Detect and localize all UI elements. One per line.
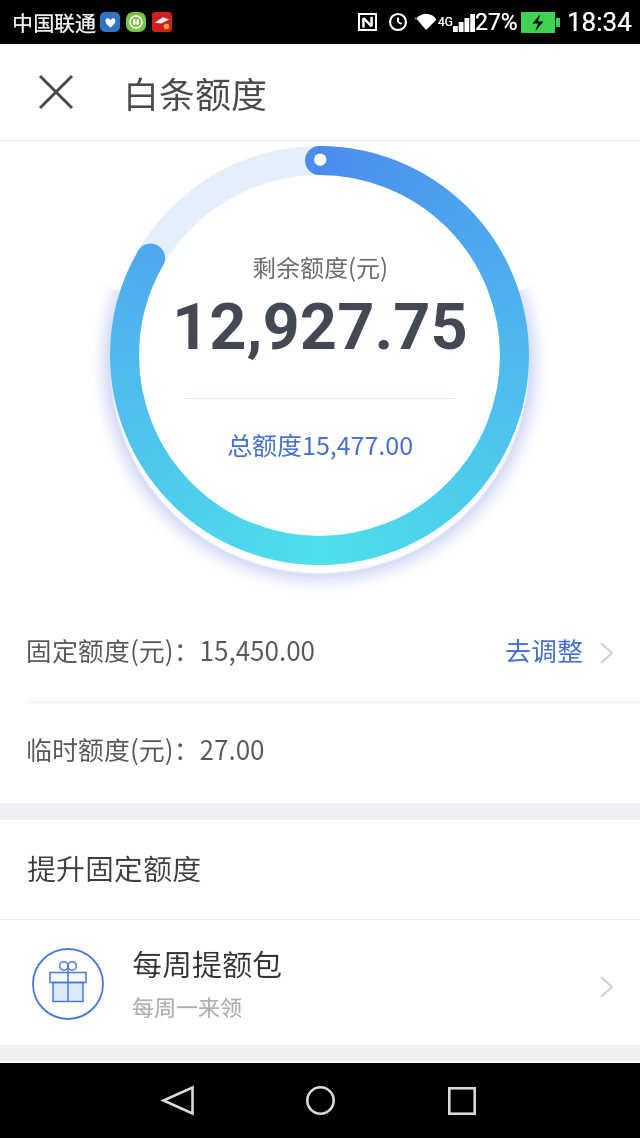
button[interactable]: 固定额度(元)：15,450.00: [0, 601, 640, 698]
staticText: 剩余额度(元): [252, 249, 389, 284]
button[interactable]: Close: [26, 62, 86, 122]
staticText: 4G: [438, 15, 453, 29]
staticText: 每周一来领: [132, 990, 243, 1022]
staticText: 临时额度(元)：27.00: [26, 730, 265, 768]
staticText: 提升固定额度: [27, 846, 202, 888]
button[interactable]: Recents: [432, 1072, 492, 1129]
staticText: 27%: [475, 9, 518, 36]
staticText: 去调整: [505, 631, 584, 669]
button[interactable]: Home: [290, 1072, 350, 1129]
staticText: 总额度15,477.00: [227, 426, 414, 462]
staticText: 白条额度: [123, 66, 268, 118]
staticText: 每周提额包: [132, 941, 282, 984]
staticText: 中国联通: [12, 7, 96, 37]
button[interactable]: Back: [148, 1072, 208, 1129]
staticText: 18:34: [567, 7, 632, 37]
staticText: 固定额度(元)：15,450.00: [26, 631, 316, 669]
button[interactable]: 临时额度(元)：27.00: [0, 700, 640, 797]
button[interactable]: 每周提额包: [0, 922, 640, 1045]
staticText: 12,927.75: [172, 289, 468, 365]
